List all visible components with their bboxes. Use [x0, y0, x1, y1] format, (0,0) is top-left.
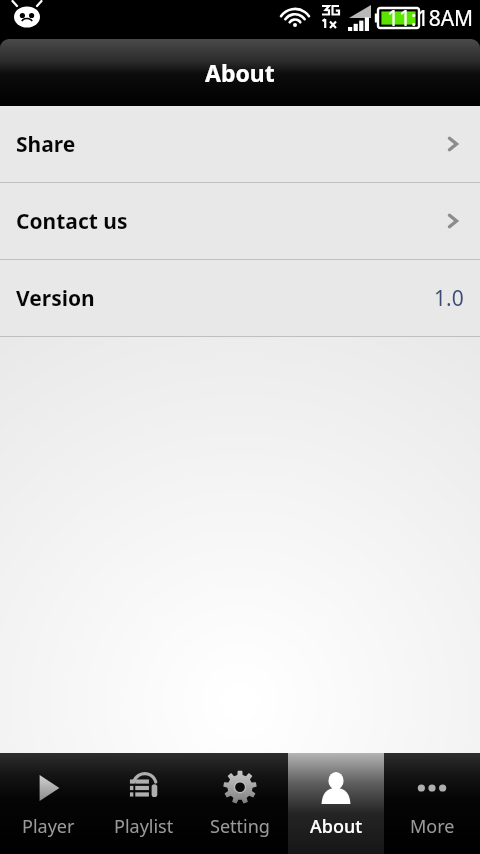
button[interactable]: About [288, 753, 384, 854]
staticText: Playlist [114, 814, 174, 839]
staticText: More [410, 814, 455, 839]
staticText: Version [16, 284, 95, 313]
staticText: Setting [210, 814, 270, 839]
staticText: Contact us [16, 207, 128, 236]
button[interactable]: Player [0, 753, 96, 854]
staticText: Player [22, 814, 75, 839]
staticText: About [205, 57, 275, 88]
button[interactable]: Setting [192, 753, 288, 854]
staticText: 1.0 [434, 284, 464, 313]
button[interactable]: Share [0, 106, 480, 182]
staticText: Share [16, 130, 76, 159]
staticText: 11:18AM [387, 4, 474, 33]
button[interactable]: Contact us [0, 183, 480, 259]
button[interactable]: Version [0, 260, 480, 336]
button[interactable]: Playlist [96, 753, 192, 854]
button[interactable]: More [384, 753, 480, 854]
staticText: About [310, 814, 363, 839]
